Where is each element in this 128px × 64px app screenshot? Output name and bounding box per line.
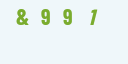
staticText: 9 xyxy=(41,3,51,29)
staticText: & xyxy=(16,3,30,29)
staticText: 1 xyxy=(88,3,95,29)
staticText: 9 xyxy=(63,3,73,29)
